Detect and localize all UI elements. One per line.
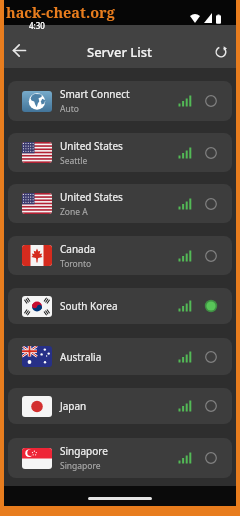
button[interactable]: Smart Connect [8,81,232,121]
button[interactable]: United States [8,184,232,223]
button[interactable]: Japan [8,388,232,424]
staticText: Auto [60,103,79,115]
staticText: Toronto [60,258,92,270]
button[interactable]: Singapore [8,438,232,478]
staticText: 4:30 [29,20,45,31]
staticText: Server List [87,43,153,61]
button[interactable] [4,38,35,64]
staticText: United States [60,139,123,153]
staticText: Singapore [60,460,101,472]
button[interactable]: Australia [8,338,232,375]
button[interactable]: South Korea [8,288,232,324]
staticText: Smart Connect [60,87,130,101]
staticText: hack-cheat.org [6,2,115,22]
button[interactable] [207,38,235,64]
button[interactable]: United States [8,133,232,172]
staticText: South Korea [60,299,118,313]
staticText: Japan [60,399,87,413]
staticText: United States [60,190,123,204]
staticText: Australia [60,350,102,364]
staticText: Zone A [60,206,88,218]
staticText: Seattle [60,155,88,167]
staticText: Singapore [60,444,108,458]
staticText: Canada [60,242,96,256]
button[interactable]: Canada [8,236,232,275]
